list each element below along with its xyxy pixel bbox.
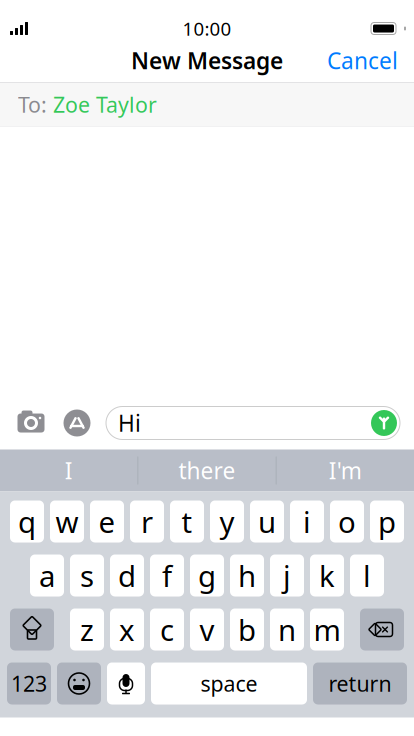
staticText: j [283, 556, 291, 595]
staticText: w [55, 502, 78, 541]
staticText: o [338, 502, 356, 541]
button[interactable]: I [0, 449, 137, 491]
button[interactable]: p [370, 500, 404, 542]
button[interactable]: u [250, 500, 284, 542]
button[interactable]: v [190, 608, 224, 650]
staticText: y [219, 502, 234, 541]
button[interactable]: Apps [60, 406, 94, 440]
button[interactable]: To: [0, 83, 414, 126]
staticText: 123 [11, 669, 47, 698]
button[interactable]: Cancel [315, 37, 410, 83]
staticText: m [313, 610, 340, 649]
button[interactable]: space [151, 662, 307, 704]
button[interactable]: z [70, 608, 104, 650]
button[interactable]: i [290, 500, 324, 542]
staticText: I'm [329, 455, 362, 485]
staticText: 10:00 [182, 16, 231, 41]
staticText: Zoe Taylor [53, 90, 157, 119]
staticText: i [303, 502, 311, 541]
staticText: Hi [118, 408, 141, 438]
button[interactable]: j [270, 554, 304, 596]
button[interactable]: y [210, 500, 244, 542]
staticText: t [181, 502, 192, 541]
button[interactable]: n [270, 608, 304, 650]
staticText: return [328, 669, 391, 698]
button[interactable]: k [310, 554, 344, 596]
staticText: there [178, 455, 235, 485]
staticText: r [141, 502, 153, 541]
staticText: l [363, 556, 371, 595]
staticText: p [378, 502, 396, 541]
button[interactable]: q [10, 500, 44, 542]
button[interactable]: f [150, 554, 184, 596]
staticText: Cancel [327, 45, 398, 75]
button[interactable]: l [350, 554, 384, 596]
staticText: space [200, 669, 257, 698]
button[interactable]: o [330, 500, 364, 542]
button[interactable]: t [170, 500, 204, 542]
button[interactable]: 123 [7, 662, 51, 704]
button[interactable]: there [138, 449, 276, 491]
staticText: b [238, 610, 256, 649]
staticText: I [65, 455, 73, 485]
button[interactable]: b [230, 608, 264, 650]
staticText: d [118, 556, 136, 595]
staticText: n [278, 610, 296, 649]
button[interactable]: r [130, 500, 164, 542]
button[interactable]: g [190, 554, 224, 596]
staticText: s [80, 556, 94, 595]
staticText: c [160, 610, 174, 649]
staticText: f [162, 556, 172, 595]
button[interactable]: Camera [14, 406, 48, 440]
staticText: e [98, 502, 115, 541]
staticText: New Message [131, 45, 283, 75]
button[interactable]: e [90, 500, 124, 542]
button[interactable]: return [313, 662, 407, 704]
button[interactable]: h [230, 554, 264, 596]
staticText: v [199, 610, 214, 649]
button[interactable]: Delete [360, 608, 404, 650]
button[interactable]: Dictate [107, 662, 145, 704]
button[interactable]: d [110, 554, 144, 596]
button[interactable]: a [30, 554, 64, 596]
button[interactable]: I'm [277, 449, 414, 491]
button[interactable]: x [110, 608, 144, 650]
staticText: To: [18, 90, 47, 119]
button[interactable]: c [150, 608, 184, 650]
staticText: k [319, 556, 335, 595]
staticText: a [39, 556, 55, 595]
button[interactable]: Shift [10, 608, 54, 650]
staticText: h [238, 556, 256, 595]
button[interactable]: s [70, 554, 104, 596]
staticText: x [119, 610, 135, 649]
staticText: u [258, 502, 276, 541]
button[interactable]: w [50, 500, 84, 542]
button[interactable]: Emoji [57, 662, 101, 704]
button[interactable]: m [310, 608, 344, 650]
button[interactable]: Send [371, 410, 400, 436]
staticText: q [18, 502, 36, 541]
staticText: z [80, 610, 94, 649]
staticText: g [198, 556, 216, 595]
